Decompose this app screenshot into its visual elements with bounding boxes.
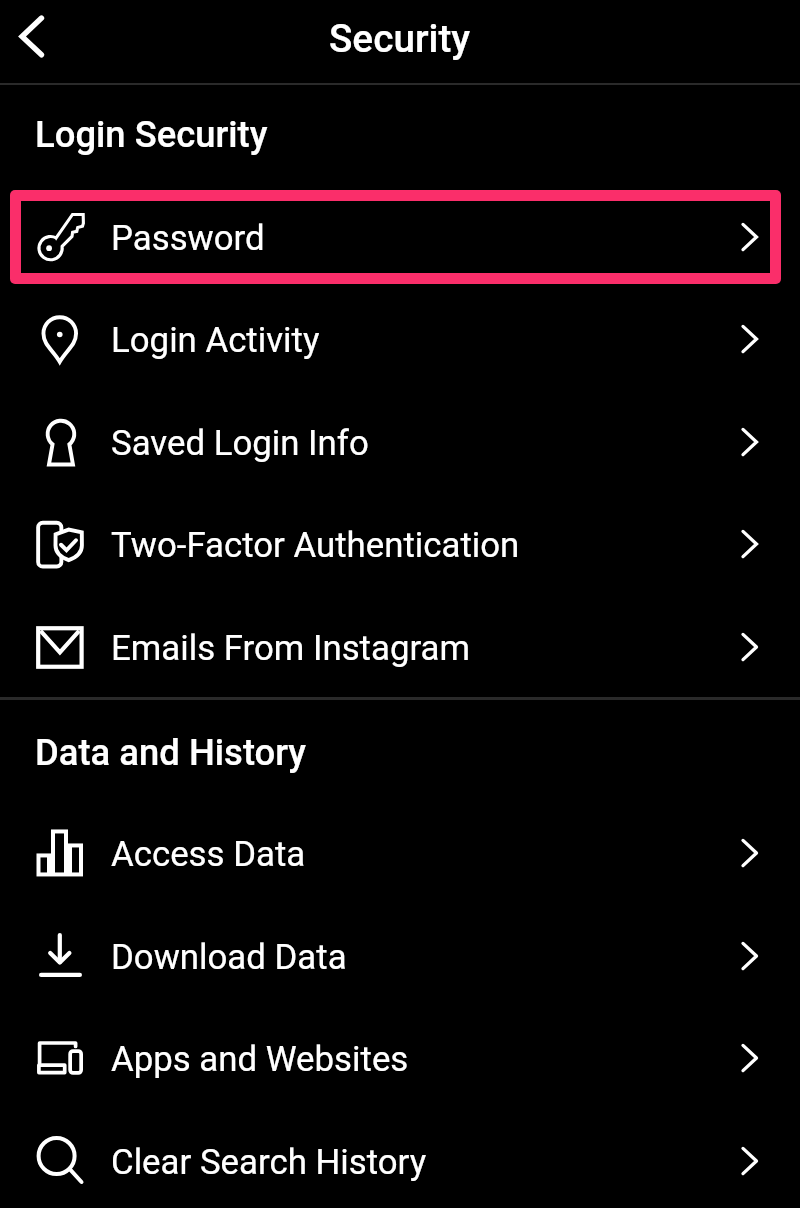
staticText: Security [329, 16, 471, 61]
button[interactable]: Clear Search History [0, 1110, 800, 1208]
button[interactable]: Password [0, 186, 800, 289]
staticText: Login Security [35, 113, 268, 156]
staticText: Password [111, 218, 265, 259]
staticText: Access Data [111, 834, 306, 875]
button[interactable]: Download Data [0, 905, 800, 1008]
button[interactable]: Apps and Websites [0, 1007, 800, 1110]
button[interactable]: Two-Factor Authentication [0, 493, 800, 596]
button[interactable]: Back [0, 0, 70, 83]
staticText: Clear Search History [111, 1142, 427, 1183]
staticText: Data and History [35, 731, 307, 774]
button[interactable]: Saved Login Info [0, 391, 800, 494]
staticText: Login Activity [111, 320, 320, 361]
staticText: Download Data [111, 937, 347, 978]
staticText: Apps and Websites [111, 1039, 409, 1080]
staticText: Two-Factor Authentication [111, 525, 520, 566]
button[interactable]: Access Data [0, 802, 800, 905]
button[interactable]: Login Activity [0, 288, 800, 391]
staticText: Emails From Instagram [111, 628, 471, 669]
staticText: Saved Login Info [111, 423, 369, 464]
button[interactable]: Emails From Instagram [0, 596, 800, 699]
